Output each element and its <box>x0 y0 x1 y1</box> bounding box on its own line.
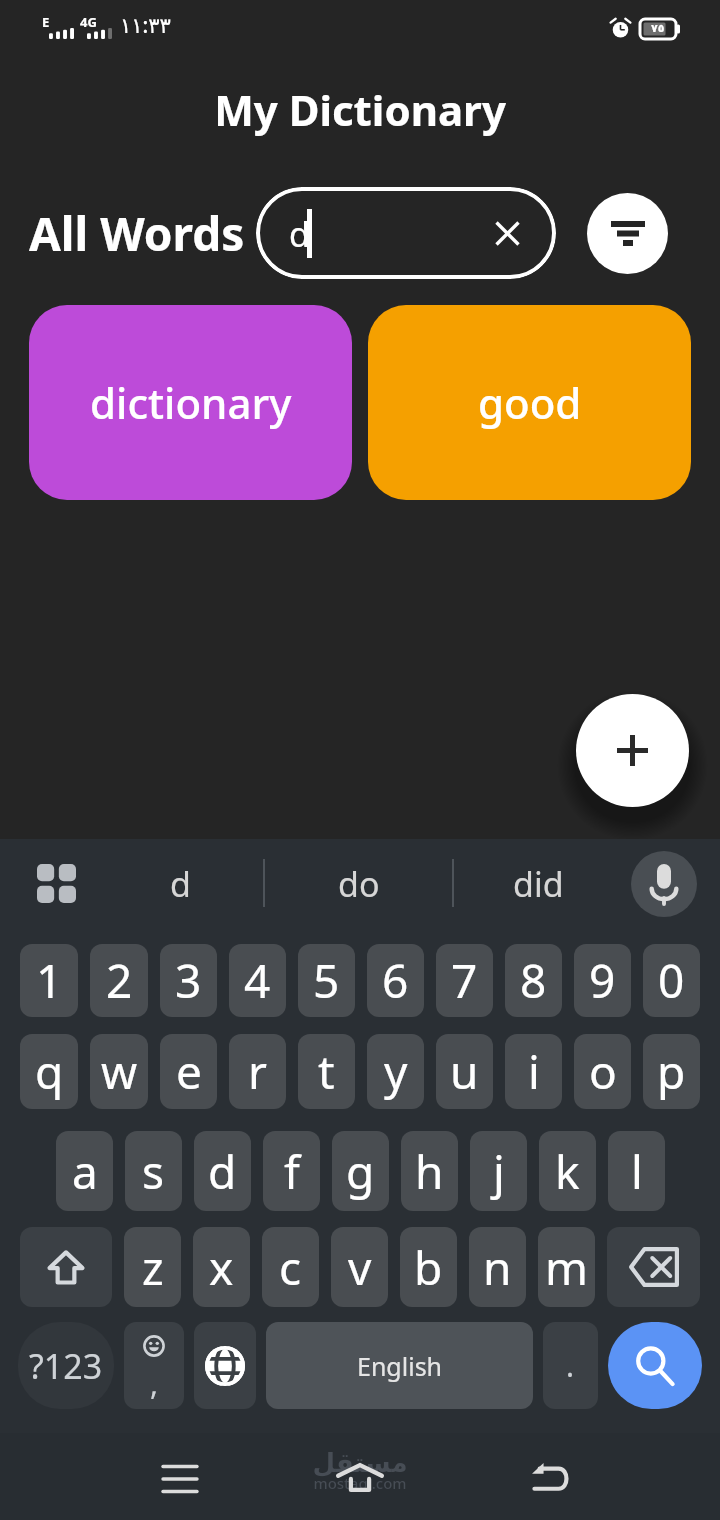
button[interactable]: Backspace <box>607 1227 700 1307</box>
button[interactable]: 1 <box>20 944 78 1017</box>
button[interactable]: do <box>265 839 453 929</box>
staticText: ٧٥ <box>651 22 665 35</box>
button[interactable]: Add word <box>576 694 689 807</box>
staticText: p <box>657 1040 686 1103</box>
button[interactable]: i <box>505 1034 562 1109</box>
staticText: t <box>318 1040 335 1103</box>
staticText: dictionary <box>90 374 292 431</box>
button[interactable]: k <box>539 1131 596 1211</box>
staticText: n <box>483 1236 512 1299</box>
staticText: q <box>35 1040 64 1103</box>
button[interactable]: 5 <box>298 944 355 1017</box>
button[interactable]: 9 <box>574 944 631 1017</box>
staticText: a <box>72 1140 98 1203</box>
staticText: 4G <box>80 13 97 31</box>
staticText: f <box>284 1140 300 1203</box>
button[interactable]: ?123 <box>18 1322 114 1409</box>
button[interactable]: Back <box>489 1433 609 1520</box>
staticText: u <box>450 1040 479 1103</box>
button[interactable]: w <box>90 1034 148 1109</box>
button[interactable]: x <box>193 1227 250 1307</box>
staticText: b <box>414 1236 443 1299</box>
button[interactable]: Recent apps <box>120 1433 240 1520</box>
button[interactable]: 6 <box>367 944 424 1017</box>
button[interactable]: Emoji <box>124 1322 184 1409</box>
button[interactable]: . <box>543 1322 598 1409</box>
button[interactable]: 0 <box>643 944 700 1017</box>
button[interactable]: j <box>470 1131 527 1211</box>
button[interactable]: Filter <box>587 193 668 274</box>
button[interactable]: Voice input <box>631 851 697 917</box>
button[interactable]: m <box>538 1227 595 1307</box>
button[interactable]: d <box>96 839 264 929</box>
button[interactable]: Change language <box>194 1322 256 1409</box>
staticText: ?123 <box>29 1343 103 1389</box>
button[interactable]: dictionary <box>29 305 352 500</box>
staticText: c <box>279 1236 302 1299</box>
staticText: . <box>566 1345 575 1386</box>
button[interactable]: e <box>160 1034 217 1109</box>
button[interactable]: f <box>263 1131 320 1211</box>
button[interactable]: Search <box>608 1322 702 1409</box>
staticText: 2 <box>106 949 133 1012</box>
staticText: l <box>631 1140 643 1203</box>
staticText: w <box>101 1040 138 1103</box>
staticText: d <box>208 1140 237 1203</box>
staticText: 6 <box>382 949 409 1012</box>
button[interactable]: 3 <box>160 944 217 1017</box>
button[interactable]: d <box>256 187 556 279</box>
staticText: m <box>545 1236 589 1299</box>
staticText: g <box>346 1140 375 1203</box>
button[interactable]: good <box>368 305 691 500</box>
button[interactable]: r <box>229 1034 286 1109</box>
button[interactable]: c <box>262 1227 319 1307</box>
staticText: good <box>478 374 582 431</box>
button[interactable]: 7 <box>436 944 493 1017</box>
button[interactable]: a <box>56 1131 113 1211</box>
button[interactable]: p <box>643 1034 700 1109</box>
staticText: s <box>142 1140 165 1203</box>
button[interactable]: b <box>400 1227 457 1307</box>
button[interactable]: q <box>20 1034 78 1109</box>
staticText: x <box>209 1236 234 1299</box>
staticText: z <box>142 1236 164 1299</box>
button[interactable]: z <box>124 1227 181 1307</box>
button[interactable]: o <box>574 1034 631 1109</box>
staticText: o <box>589 1040 617 1103</box>
staticText: All Words <box>29 202 245 265</box>
staticText: i <box>528 1040 540 1103</box>
button[interactable]: Home <box>300 1433 420 1520</box>
button[interactable]: 8 <box>505 944 562 1017</box>
button[interactable]: d <box>194 1131 251 1211</box>
button[interactable]: u <box>436 1034 493 1109</box>
staticText: v <box>348 1236 372 1299</box>
button[interactable]: n <box>469 1227 526 1307</box>
staticText: My Dictionary <box>0 81 720 138</box>
button[interactable]: 2 <box>90 944 148 1017</box>
button[interactable]: Clear search <box>484 210 530 256</box>
staticText: 3 <box>175 949 202 1012</box>
button[interactable]: 4 <box>229 944 286 1017</box>
button[interactable]: English <box>266 1322 533 1409</box>
button[interactable]: t <box>298 1034 355 1109</box>
button[interactable]: Shift <box>20 1227 112 1307</box>
staticText: ١١:٣٣ <box>120 11 171 40</box>
staticText: do <box>338 861 380 907</box>
staticText: E <box>42 13 50 31</box>
staticText: h <box>415 1140 444 1203</box>
staticText: d <box>170 861 191 907</box>
staticText: 5 <box>313 949 340 1012</box>
button[interactable]: Keyboard options <box>28 855 84 911</box>
staticText: 4 <box>244 949 271 1012</box>
button[interactable]: g <box>332 1131 389 1211</box>
button[interactable]: s <box>125 1131 182 1211</box>
button[interactable]: h <box>401 1131 458 1211</box>
staticText: 9 <box>589 949 616 1012</box>
button[interactable]: l <box>608 1131 665 1211</box>
button[interactable]: did <box>454 839 622 929</box>
button[interactable]: v <box>331 1227 388 1307</box>
staticText: y <box>384 1040 408 1103</box>
button[interactable]: y <box>367 1034 424 1109</box>
staticText: مستقل <box>300 1448 420 1478</box>
staticText: did <box>513 861 564 907</box>
